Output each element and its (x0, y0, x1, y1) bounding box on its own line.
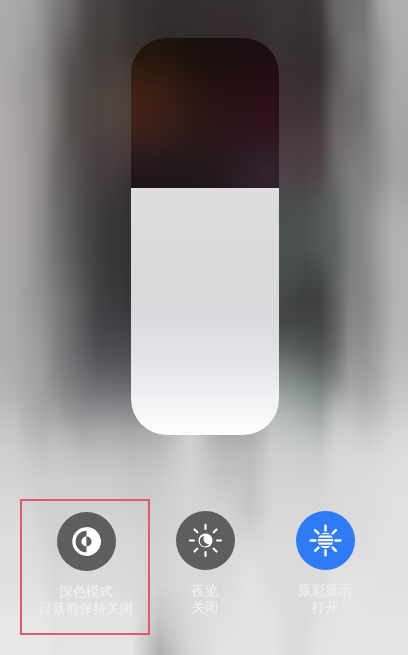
staticText: 夜览 (150, 582, 260, 599)
button[interactable]: 夜览 (150, 511, 260, 616)
button[interactable]: 原彩显示 (270, 511, 380, 616)
staticText: 打开 (270, 599, 380, 616)
staticText: 原彩显示 (270, 582, 380, 599)
button[interactable]: 深色模式 (31, 512, 141, 617)
staticText: 深色模式 (31, 583, 141, 600)
staticText: 日落前保持关闭 (31, 600, 141, 617)
staticText: 关闭 (150, 599, 260, 616)
button[interactable]: Brightness (131, 38, 279, 435)
